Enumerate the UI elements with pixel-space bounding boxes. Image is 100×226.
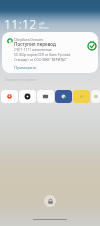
staticText: 11:12 — [4, 16, 37, 33]
staticText: СЧЁТ··1111 пополнение 50 300р перев СБП … — [14, 47, 71, 62]
button[interactable]: Assistant — [19, 90, 36, 103]
button[interactable]: More — [91, 90, 100, 103]
staticText: Москва — [39, 26, 49, 30]
button[interactable]: Yandex — [1, 90, 18, 103]
staticText: Сбербанк Онлайн — [14, 37, 43, 41]
staticText: +8° — [39, 21, 45, 26]
button[interactable]: Camera — [37, 90, 54, 103]
button[interactable]: Unlock — [44, 195, 56, 207]
button[interactable]: Примерить — [14, 65, 37, 70]
button[interactable]: Сбербанк Онлайн — [2, 32, 98, 73]
button[interactable]: VK — [55, 90, 72, 103]
button[interactable]: Notes — [73, 90, 90, 103]
staticText: Примерить — [14, 65, 37, 70]
staticText: Быстрые настройки — [5, 78, 36, 82]
staticText: Поступил перевод — [14, 41, 56, 47]
